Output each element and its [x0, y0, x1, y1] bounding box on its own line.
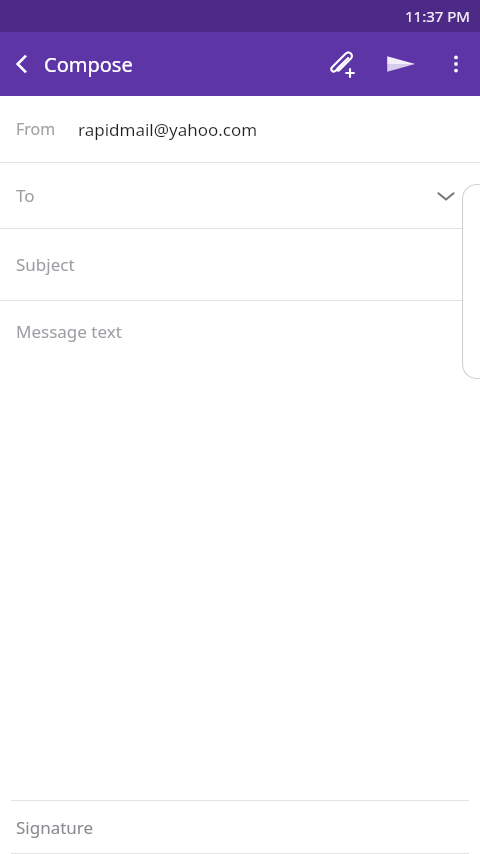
staticText: Signature [16, 816, 94, 839]
staticText: 11:37 PM [405, 6, 470, 26]
button[interactable]: Back [0, 32, 44, 96]
staticText: Compose [44, 51, 133, 78]
button[interactable]: Signature [0, 801, 480, 853]
staticText: To [16, 184, 35, 207]
button[interactable]: More options [432, 32, 480, 96]
button[interactable]: Expand recipients [424, 174, 468, 218]
staticText: rapidmail@yahoo.com [78, 118, 258, 141]
button[interactable]: From [0, 96, 480, 162]
staticText: Subject [16, 253, 75, 276]
button[interactable]: To [0, 163, 480, 228]
staticText: Message text [16, 320, 122, 343]
button[interactable]: Message text [0, 301, 480, 361]
button[interactable]: Subject [0, 229, 480, 300]
button[interactable]: Send [370, 32, 432, 96]
staticText: From [16, 118, 56, 140]
button[interactable]: Attach file [312, 32, 370, 96]
